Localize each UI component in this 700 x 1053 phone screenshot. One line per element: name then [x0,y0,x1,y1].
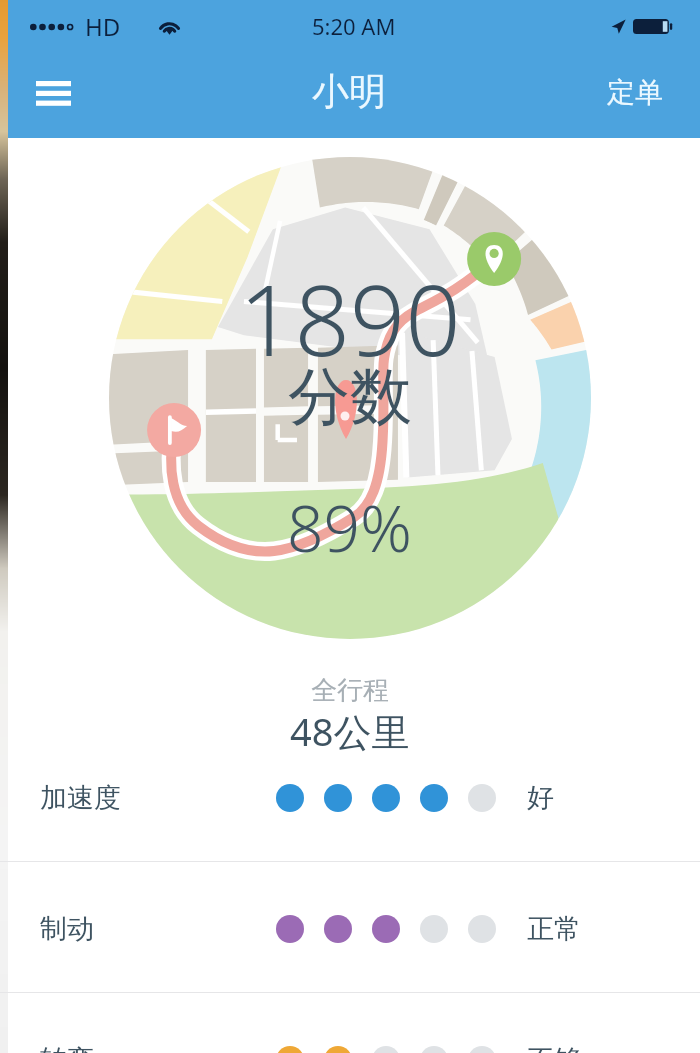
button[interactable]: 制动 [0,893,700,965]
staticText: 转弯 [40,1043,94,1053]
staticText: 48公里 [290,705,410,757]
staticText: 好 [527,781,554,815]
button[interactable]: Menu [8,52,98,138]
staticText: 1890 [239,252,461,384]
button[interactable]: 转弯 [0,1024,700,1053]
staticText: 小明 [312,68,386,115]
staticText: 加速度 [40,781,121,815]
staticText: 分数 [288,358,412,436]
button[interactable]: 加速度 [0,762,700,834]
staticText: HD [85,10,121,43]
staticText: 不够 [527,1043,581,1053]
staticText: 定单 [607,75,663,110]
staticText: 正常 [527,912,581,946]
staticText: 全行程 [311,674,389,707]
staticText: 89% [287,484,413,571]
staticText: 5:20 AM [312,11,396,41]
button[interactable]: 定单 [570,49,700,135]
staticText: 制动 [40,912,94,946]
